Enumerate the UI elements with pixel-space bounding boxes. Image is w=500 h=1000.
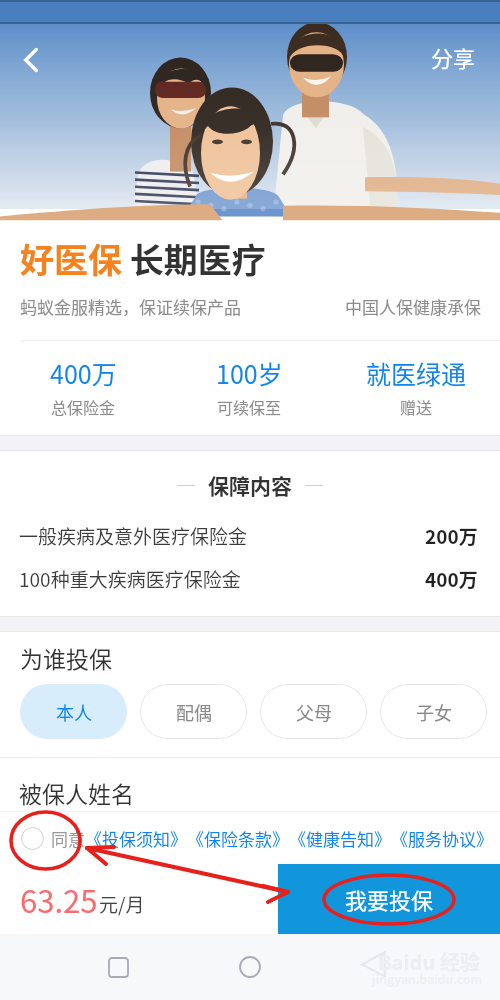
button[interactable]: 本人 (20, 684, 127, 739)
staticText: Baidu (378, 947, 436, 976)
staticText: jingyan.baidu.com (372, 970, 483, 987)
staticText: 好医保 长期医疗 (20, 234, 266, 283)
staticText: 100种重大疾病医疗保险金 (19, 565, 241, 593)
staticText: 被保人姓名 (19, 776, 134, 809)
button[interactable]: Home (230, 947, 270, 987)
staticText: 400万 (50, 355, 117, 391)
staticText: 《投保须知》《保险条款》《健康告知》《服务协议》 (85, 826, 493, 851)
staticText: 400万 (425, 565, 478, 593)
staticText: 总保险金 (51, 395, 116, 418)
button[interactable]: Back (10, 39, 52, 81)
button[interactable]: 同意 (51, 826, 493, 851)
staticText: 配偶 (176, 699, 212, 725)
button[interactable]: 子女 (380, 684, 487, 739)
staticText: 一般疾病及意外医疗保险金 (19, 522, 248, 550)
staticText: 蚂蚁金服精选，保证续保产品 (20, 294, 241, 319)
staticText: 元/月 (99, 890, 145, 918)
staticText: 中国人保健康承保 (345, 294, 481, 319)
staticText: 200万 (425, 522, 478, 550)
staticText: 就医绿通 (366, 355, 467, 391)
button[interactable]: 我要投保 (278, 864, 500, 934)
button[interactable]: Back (360, 947, 400, 987)
button[interactable]: Recents (98, 947, 138, 987)
button[interactable]: 分享 (431, 41, 476, 73)
staticText: 父母 (296, 699, 332, 725)
staticText: 本人 (56, 699, 92, 725)
staticText: 保障内容 (208, 470, 292, 500)
button[interactable]: 配偶 (140, 684, 247, 739)
staticText: 经验 (440, 947, 480, 976)
button[interactable]: 父母 (260, 684, 367, 739)
button[interactable]: Agree checkbox (21, 827, 44, 850)
staticText: 赠送 (400, 395, 433, 418)
staticText: 同意 (51, 826, 85, 851)
staticText: 63.25 (20, 877, 98, 922)
staticText: 为谁投保 (20, 641, 112, 674)
staticText: 100岁 (216, 355, 283, 391)
staticText: 子女 (416, 699, 452, 725)
staticText: 我要投保 (345, 883, 434, 915)
staticText: 可续保至 (217, 395, 282, 418)
staticText: 分享 (431, 41, 476, 73)
